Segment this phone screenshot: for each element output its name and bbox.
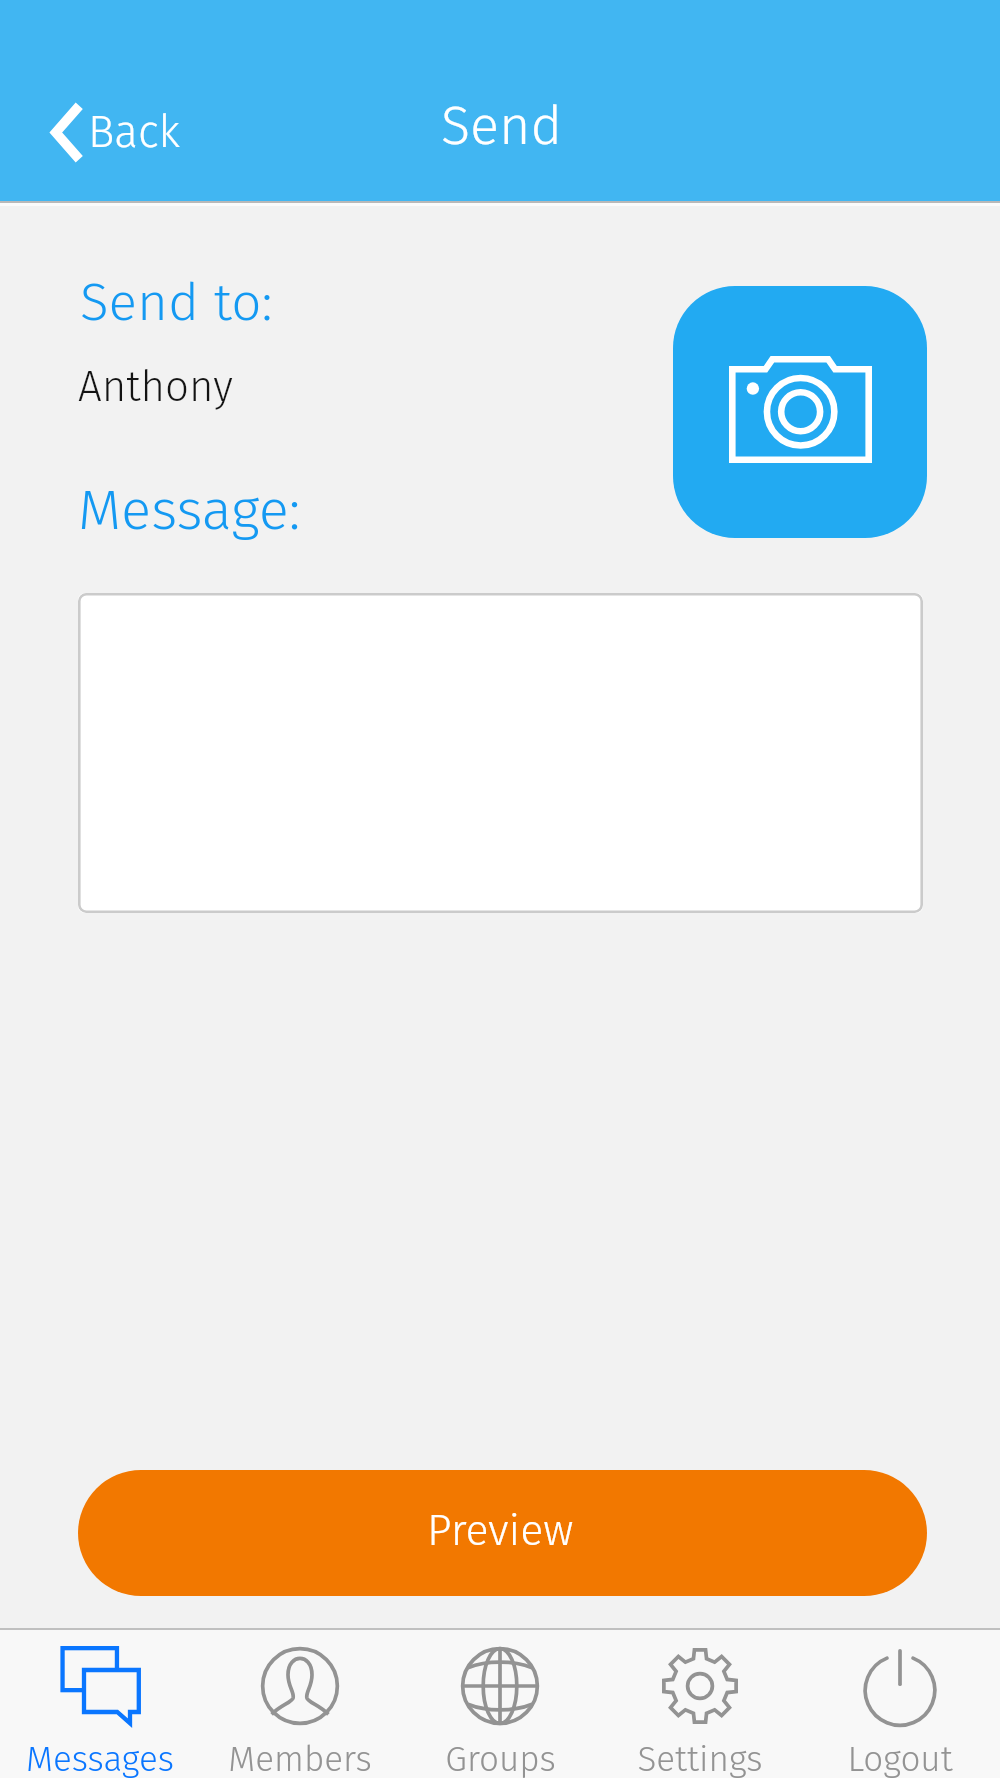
staticText: Message: bbox=[78, 477, 301, 544]
button[interactable]: Logout bbox=[800, 1628, 1000, 1778]
button[interactable]: Settings bbox=[600, 1628, 800, 1778]
staticText: Back bbox=[88, 106, 181, 159]
button[interactable]: Messages bbox=[0, 1628, 200, 1778]
button[interactable]: Preview bbox=[78, 1470, 927, 1596]
staticText: Groups bbox=[445, 1738, 556, 1778]
button[interactable]: Back bbox=[34, 85, 201, 180]
staticText: Logout bbox=[847, 1738, 953, 1778]
staticText: Send bbox=[441, 94, 563, 159]
button[interactable]: Groups bbox=[400, 1628, 600, 1778]
staticText: Anthony bbox=[78, 362, 233, 412]
button[interactable]: Message bbox=[78, 593, 923, 913]
staticText: Settings bbox=[637, 1738, 763, 1778]
button[interactable]: Members bbox=[200, 1628, 400, 1778]
staticText: Preview bbox=[427, 1505, 574, 1557]
staticText: Members bbox=[228, 1738, 372, 1778]
staticText: Messages bbox=[26, 1738, 174, 1778]
button[interactable]: Take photo bbox=[673, 286, 927, 538]
staticText: Send to: bbox=[80, 270, 273, 334]
